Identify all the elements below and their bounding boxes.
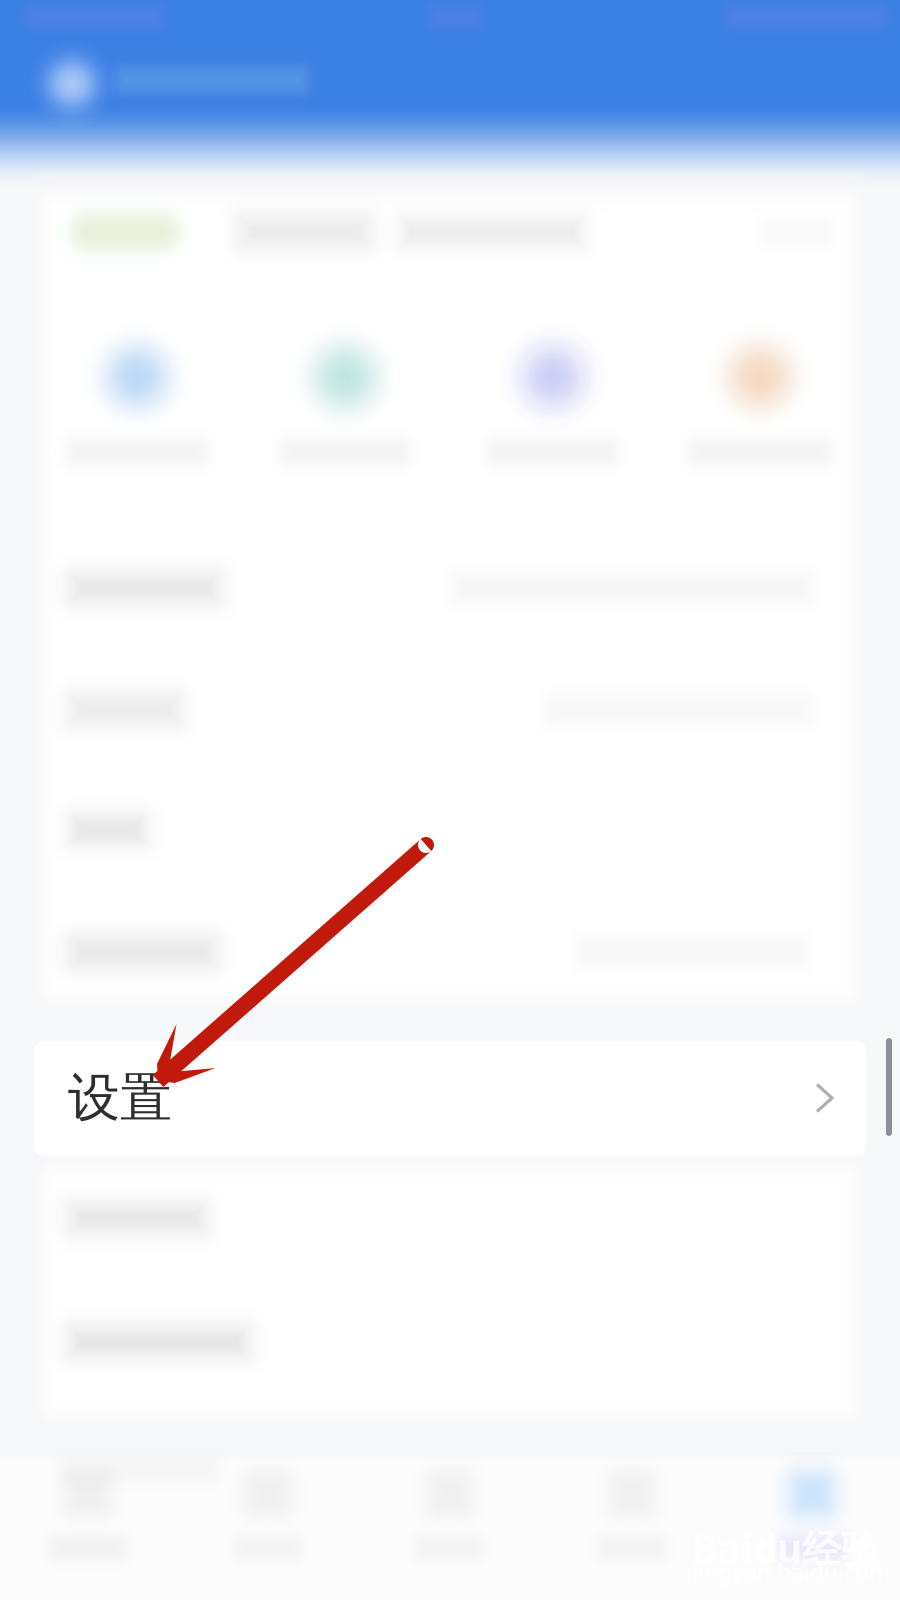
button[interactable]: 设置 bbox=[34, 1041, 866, 1155]
staticText: Baidu经验 bbox=[692, 1522, 880, 1573]
staticText: 设置 bbox=[68, 1066, 172, 1130]
